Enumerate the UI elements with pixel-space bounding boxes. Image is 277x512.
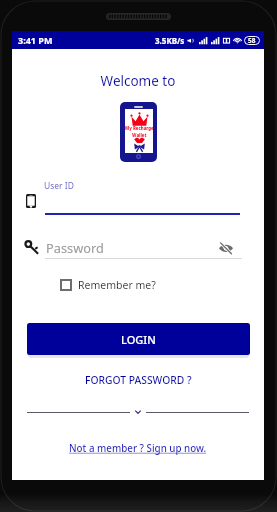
staticText: User ID (44, 180, 74, 192)
staticText: Wallet (132, 132, 147, 138)
staticText: 3.5KB/s (155, 35, 185, 46)
button[interactable]: Not a member ? Sign up now. (65, 440, 211, 457)
staticText: 58 (248, 36, 256, 45)
staticText: FORGOT PASSWORD ? (85, 373, 192, 387)
staticText: 3:41 PM (18, 34, 53, 46)
button[interactable]: User ID input (12, 180, 264, 216)
staticText: Welcome to (12, 72, 264, 90)
button[interactable]: LOGIN (27, 323, 250, 355)
staticText: Remember me? (78, 278, 156, 292)
button[interactable]: Password input (12, 238, 264, 262)
button[interactable]: FORGOT PASSWORD ? (79, 371, 198, 389)
button[interactable]: Remember me? (58, 276, 158, 294)
staticText: Password (46, 239, 104, 256)
button[interactable]: Show password (217, 239, 235, 257)
staticText: My Recharge (125, 125, 153, 131)
staticText: Not a member ? Sign up now. (69, 442, 207, 455)
staticText: LOGIN (121, 332, 156, 347)
